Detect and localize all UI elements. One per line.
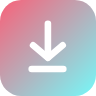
button[interactable]: Download bbox=[0, 0, 96, 96]
